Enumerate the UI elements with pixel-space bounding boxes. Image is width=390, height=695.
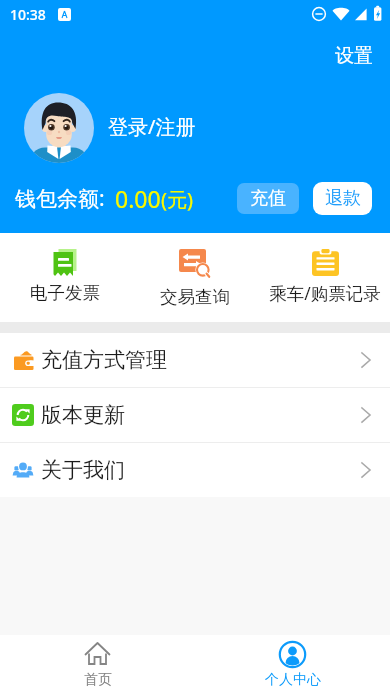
button[interactable]: 版本更新	[0, 388, 390, 442]
staticText: 充值	[250, 187, 286, 210]
staticText: 登录/注册	[108, 113, 196, 140]
button[interactable]: 充值方式管理	[0, 333, 390, 387]
staticText: 10:38	[10, 5, 46, 24]
staticText: 版本更新	[41, 402, 125, 428]
staticText: 个人中心	[265, 671, 321, 689]
staticText: 退款	[325, 187, 361, 210]
staticText: 设置	[335, 44, 373, 68]
button[interactable]: 设置	[329, 39, 379, 73]
staticText: 首页	[84, 671, 112, 689]
button[interactable]: 乘车/购票记录	[260, 233, 390, 322]
staticText: 充值方式管理	[41, 347, 167, 373]
staticText: 交易查询	[160, 286, 230, 308]
staticText: 0.00	[115, 183, 161, 214]
staticText: (元)	[161, 186, 193, 213]
other: 头像	[24, 93, 94, 163]
button[interactable]: 充值	[237, 183, 299, 214]
button[interactable]: 个人中心	[195, 635, 390, 695]
staticText: 乘车/购票记录	[269, 281, 381, 305]
button[interactable]: 交易查询	[130, 233, 260, 322]
staticText: 电子发票	[30, 282, 100, 304]
button[interactable]: 电子发票	[0, 233, 130, 322]
button[interactable]: 首页	[0, 635, 195, 695]
button[interactable]: 退款	[313, 182, 372, 215]
staticText: 钱包余额:	[15, 184, 105, 213]
staticText: 关于我们	[41, 457, 125, 483]
button[interactable]: 关于我们	[0, 443, 390, 497]
